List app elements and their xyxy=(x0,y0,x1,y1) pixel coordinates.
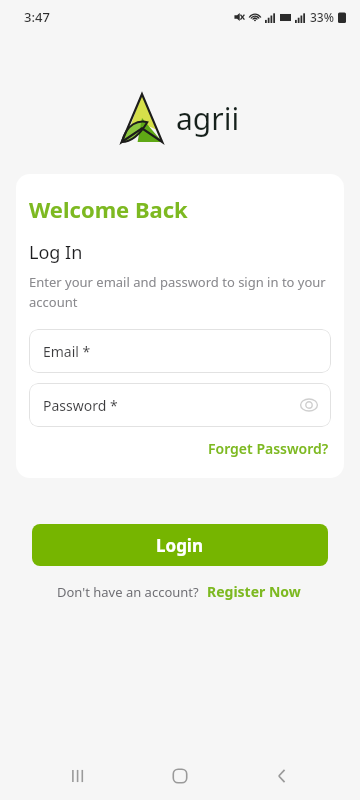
staticText: Welcome Back xyxy=(29,194,188,224)
staticText: Enter your email and password to sign in… xyxy=(29,273,331,311)
button[interactable]: Register Now xyxy=(205,580,303,603)
staticText: Email * xyxy=(43,342,91,361)
button[interactable]: Password * xyxy=(29,383,331,427)
button[interactable]: Back xyxy=(258,752,306,800)
staticText: Login xyxy=(156,534,204,557)
staticText: Log In xyxy=(29,240,83,265)
button[interactable]: Show password xyxy=(299,395,319,415)
staticText: 3:47 xyxy=(24,8,50,26)
staticText: agrii xyxy=(176,98,240,139)
button[interactable]: Forget Password? xyxy=(206,437,331,460)
staticText: Password * xyxy=(43,396,118,415)
button[interactable]: Recents xyxy=(54,752,102,800)
staticText: 33% xyxy=(310,9,334,25)
button[interactable]: Login xyxy=(32,524,328,566)
staticText: Don't have an account? xyxy=(57,583,199,601)
button[interactable]: Email * xyxy=(29,329,331,373)
button[interactable]: Home xyxy=(156,752,204,800)
